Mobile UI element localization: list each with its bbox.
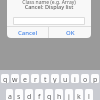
staticText: k (77, 92, 81, 100)
button[interactable]: f (35, 89, 43, 100)
button[interactable]: a (6, 89, 13, 100)
staticText: y (53, 75, 57, 83)
staticText: q (3, 75, 8, 83)
button[interactable]: i (71, 74, 79, 83)
staticText: a (8, 92, 12, 100)
staticText: i (74, 75, 76, 83)
button[interactable]: k (75, 89, 83, 100)
staticText: OK (66, 29, 75, 37)
staticText: d (27, 92, 32, 100)
button[interactable]: h (55, 89, 63, 100)
staticText: p (93, 75, 98, 83)
button[interactable]: d (25, 89, 33, 100)
button[interactable]: w (11, 74, 19, 83)
button[interactable]: s (15, 89, 23, 100)
staticText: w (12, 75, 18, 83)
staticText: t (44, 75, 47, 83)
staticText: g (47, 92, 52, 100)
staticText: h (57, 92, 62, 100)
button[interactable]: t (41, 74, 49, 83)
button[interactable]: OK (49, 27, 91, 38)
staticText: o (83, 75, 88, 83)
staticText: u (63, 75, 68, 83)
staticText: Cancel (18, 29, 38, 37)
button[interactable]: g (45, 89, 53, 100)
staticText: s (17, 92, 21, 100)
button[interactable]: e (21, 74, 29, 83)
staticText: j (68, 92, 70, 100)
button[interactable]: o (81, 74, 89, 83)
button[interactable]: u (61, 74, 69, 83)
staticText: Cancel: Display list (7, 3, 91, 10)
staticText: f (38, 92, 41, 100)
button[interactable]: Cancel (7, 27, 48, 38)
button[interactable]: j (65, 89, 73, 100)
button[interactable]: r (31, 74, 39, 83)
button[interactable]: y (51, 74, 59, 83)
button[interactable]: l (85, 89, 93, 100)
staticText: l (88, 92, 90, 100)
staticText: Class name (e.g. Array) (7, 0, 91, 6)
staticText: r (34, 75, 37, 83)
staticText: e (23, 75, 27, 83)
button[interactable]: q (1, 74, 9, 83)
button[interactable]: p (91, 74, 99, 83)
